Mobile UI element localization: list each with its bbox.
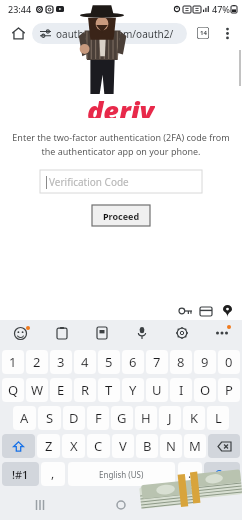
button[interactable]: Payment methods (198, 303, 214, 319)
button[interactable]: Q (2, 378, 24, 402)
button[interactable]: J (159, 406, 181, 430)
staticText: S (46, 409, 54, 427)
staticText: 9 (201, 353, 209, 371)
button[interactable]: Space (68, 462, 175, 486)
staticText: V (119, 437, 127, 455)
staticText: G (117, 409, 127, 427)
staticText: K (190, 409, 199, 427)
button[interactable]: Go (204, 462, 240, 486)
button[interactable]: Symbols (2, 462, 39, 486)
button[interactable]: Home (80, 490, 161, 520)
button[interactable]: D (63, 406, 85, 430)
button[interactable]: Tabs (192, 22, 214, 44)
staticText: 0 (225, 353, 233, 371)
button[interactable]: M (184, 434, 206, 458)
button[interactable]: Voice input (122, 320, 162, 346)
staticText: Q (8, 381, 19, 399)
staticText: Z (45, 437, 53, 455)
button[interactable]: C (87, 434, 110, 458)
button[interactable]: N (160, 434, 182, 458)
button[interactable]: R (74, 378, 96, 402)
button[interactable]: O (194, 378, 216, 402)
staticText: 5 (105, 353, 113, 371)
staticText: 1 (9, 353, 17, 371)
button[interactable]: . (178, 462, 202, 486)
staticText: , (51, 465, 55, 481)
button[interactable]: K (183, 406, 205, 430)
button[interactable]: 9 (194, 350, 216, 374)
button[interactable]: 1 (2, 350, 24, 374)
button[interactable]: Backspace (208, 434, 240, 458)
button[interactable]: oauth.deriv.com/oauth2/aut (32, 23, 187, 44)
button[interactable]: Shift (2, 434, 35, 458)
button[interactable]: Back (161, 490, 242, 520)
button[interactable]: W (26, 378, 48, 402)
button[interactable]: , (41, 462, 65, 486)
button[interactable]: X (62, 434, 85, 458)
staticText: Y (129, 381, 137, 399)
staticText: A (20, 409, 29, 427)
button[interactable]: I (170, 378, 192, 402)
staticText: !#1 (12, 467, 29, 482)
button[interactable]: L (207, 406, 229, 430)
staticText: W (31, 381, 44, 399)
staticText: 3 (57, 353, 65, 371)
button[interactable]: 7 (146, 350, 168, 374)
button[interactable]: 5 (98, 350, 120, 374)
button[interactable]: Translate (82, 320, 122, 346)
button[interactable]: E (50, 378, 72, 402)
button[interactable]: S (38, 406, 61, 430)
button[interactable]: Y (122, 378, 144, 402)
button[interactable]: More (202, 320, 242, 346)
staticText: J (168, 409, 172, 427)
staticText: L (215, 409, 222, 427)
staticText: 23:44 (8, 3, 32, 15)
staticText: Go (215, 467, 229, 481)
staticText: D (69, 409, 79, 427)
button[interactable]: More options (216, 22, 238, 44)
button[interactable]: F (87, 406, 109, 430)
button[interactable]: Verification Code (40, 170, 202, 193)
staticText: O (200, 381, 211, 399)
button[interactable]: A (13, 406, 36, 430)
staticText: M (189, 437, 201, 455)
button[interactable]: 8 (170, 350, 192, 374)
button[interactable]: Clipboard (41, 320, 82, 346)
button[interactable]: 6 (122, 350, 144, 374)
staticText: Enter the two-factor authentication (2FA… (7, 131, 235, 158)
staticText: T (105, 381, 113, 399)
button[interactable]: Recents (0, 490, 80, 520)
button[interactable]: 2 (26, 350, 48, 374)
button[interactable]: 0 (218, 350, 240, 374)
button[interactable]: B (136, 434, 158, 458)
button[interactable]: Emoji (0, 320, 41, 346)
staticText: F (95, 409, 102, 427)
button[interactable]: G (111, 406, 133, 430)
staticText: I (179, 381, 184, 399)
button[interactable]: Deriv (87, 92, 155, 118)
staticText: . (188, 465, 192, 481)
button[interactable]: Settings (162, 320, 202, 346)
button[interactable]: Addresses (219, 303, 235, 319)
button[interactable]: V (112, 434, 134, 458)
staticText: H (141, 409, 151, 427)
staticText: English (US) (99, 469, 144, 480)
button[interactable]: 3 (50, 350, 72, 374)
staticText: 14 (200, 29, 207, 37)
staticText: Proceed (103, 210, 140, 222)
staticText: Verification Code (49, 175, 129, 189)
button[interactable]: P (218, 378, 240, 402)
button[interactable]: T (98, 378, 120, 402)
button[interactable]: 4 (74, 350, 96, 374)
staticText: 4 (81, 353, 89, 371)
button[interactable]: Passwords (177, 303, 193, 319)
staticText: deriv (87, 92, 155, 118)
staticText: 8 (177, 353, 185, 371)
button[interactable]: U (146, 378, 168, 402)
staticText: P (225, 381, 233, 399)
button[interactable]: H (135, 406, 157, 430)
button[interactable]: Z (37, 434, 60, 458)
button[interactable]: Proceed (92, 205, 150, 226)
staticText: R (81, 381, 90, 399)
button[interactable]: Home (6, 21, 30, 45)
